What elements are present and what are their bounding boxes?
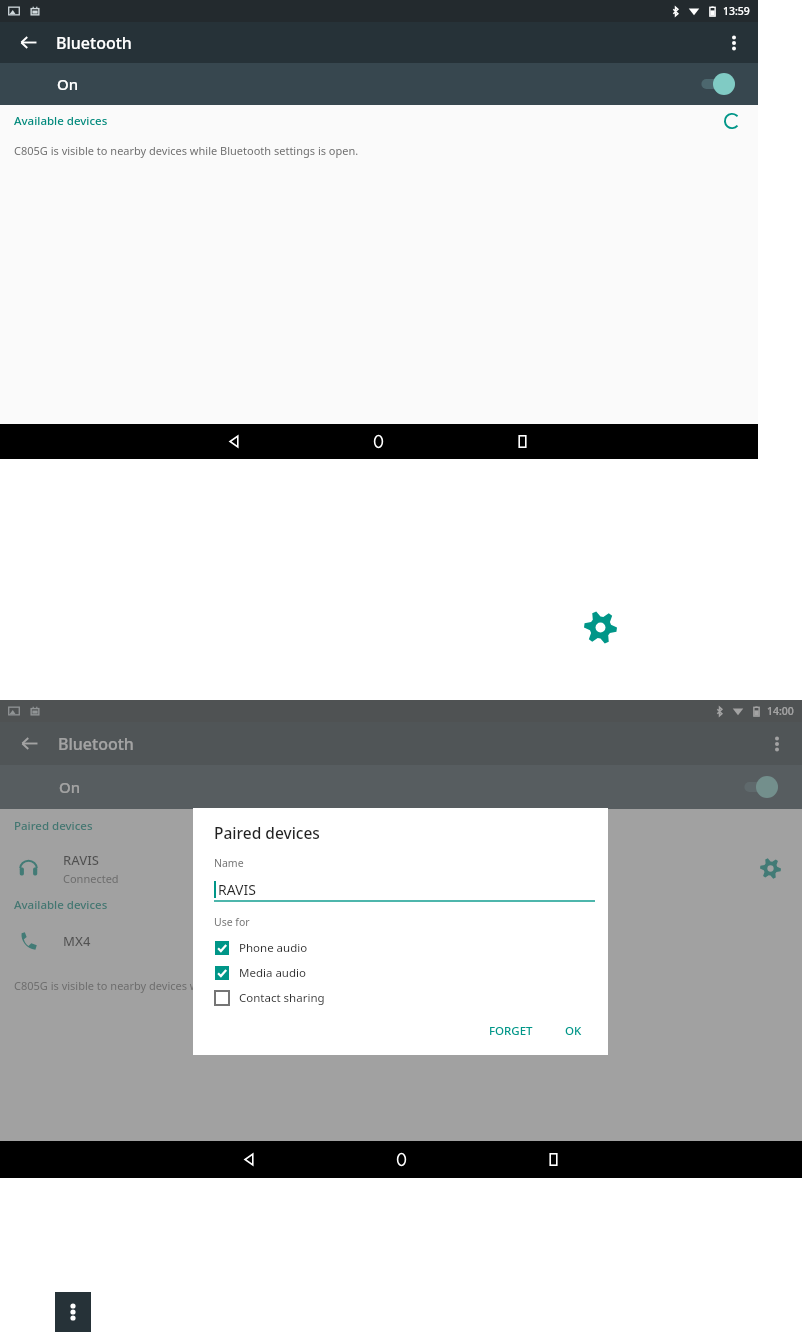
- staticText: 14:00: [767, 704, 794, 718]
- button[interactable]: More options: [710, 22, 758, 63]
- staticText: Use for: [214, 915, 250, 929]
- button[interactable]: Home: [361, 424, 396, 459]
- staticText: Name: [214, 856, 244, 870]
- staticText: Available devices: [14, 113, 108, 129]
- button[interactable]: FORGET: [481, 1017, 541, 1045]
- button[interactable]: MX4: [0, 924, 802, 958]
- button[interactable]: Recent apps: [505, 424, 540, 459]
- button[interactable]: Back: [231, 1141, 268, 1178]
- button[interactable]: More options: [55, 1292, 91, 1332]
- staticText: RAVIS: [63, 851, 99, 869]
- button[interactable]: On: [0, 63, 758, 105]
- staticText: OK: [565, 1023, 582, 1039]
- staticText: Bluetooth: [58, 733, 134, 755]
- button[interactable]: Back: [217, 424, 252, 459]
- button[interactable]: Navigate up: [0, 722, 58, 765]
- button[interactable]: Phone audio: [193, 935, 608, 960]
- staticText: Available devices: [14, 897, 108, 913]
- button[interactable]: Recent apps: [535, 1141, 572, 1178]
- button[interactable]: On: [0, 765, 802, 809]
- button[interactable]: OK: [557, 1017, 590, 1045]
- button[interactable]: Device settings: [748, 846, 792, 890]
- button[interactable]: RAVIS: [214, 876, 595, 902]
- staticText: Phone audio: [239, 940, 308, 956]
- staticText: Contact sharing: [239, 990, 325, 1006]
- staticText: FORGET: [489, 1023, 533, 1039]
- staticText: Bluetooth: [56, 32, 132, 54]
- staticText: On: [57, 74, 79, 94]
- button[interactable]: Media audio: [193, 960, 608, 985]
- button[interactable]: Navigate up: [0, 22, 56, 63]
- staticText: Paired devices: [214, 822, 320, 843]
- staticText: RAVIS: [218, 880, 256, 899]
- button[interactable]: RAVIS: [0, 846, 802, 890]
- button[interactable]: Home: [383, 1141, 420, 1178]
- staticText: Paired devices: [14, 818, 93, 834]
- button[interactable]: Device settings: [584, 611, 617, 644]
- button[interactable]: [0, 700, 802, 1141]
- staticText: 13:59: [723, 4, 750, 18]
- staticText: Media audio: [239, 965, 306, 981]
- button[interactable]: Contact sharing: [193, 985, 608, 1010]
- staticText: Connected: [63, 871, 119, 886]
- staticText: C805G is visible to nearby devices while…: [14, 978, 359, 993]
- staticText: On: [59, 777, 81, 797]
- staticText: C805G is visible to nearby devices while…: [14, 143, 359, 158]
- staticText: MX4: [63, 932, 91, 950]
- button[interactable]: More options: [752, 722, 802, 765]
